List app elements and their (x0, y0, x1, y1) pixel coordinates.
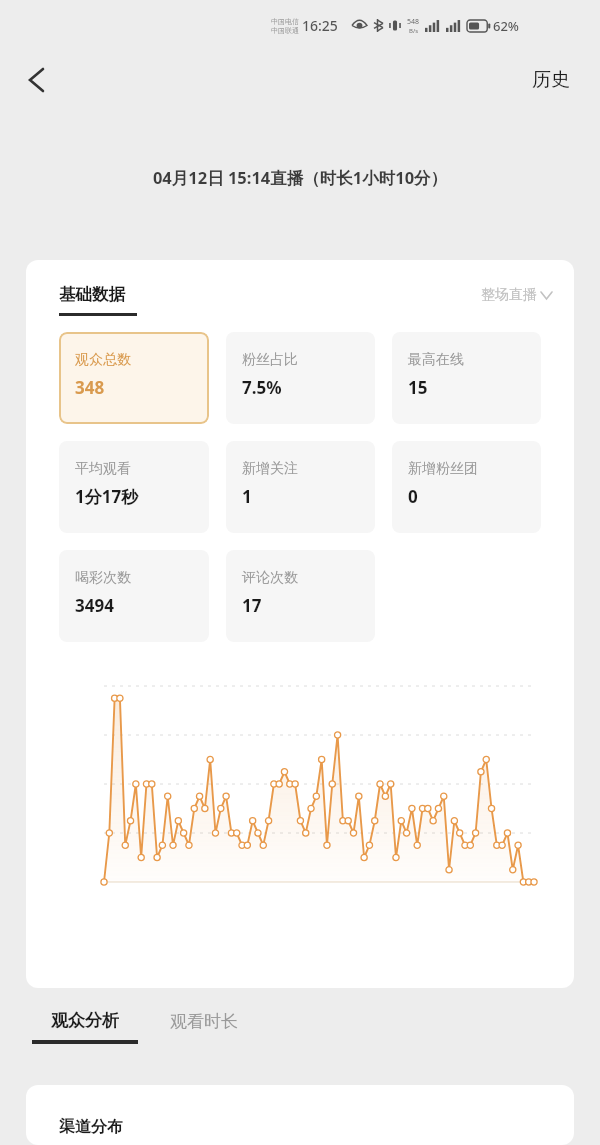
staticText: 观众分析 (51, 1010, 119, 1031)
staticText: 16:25 (302, 16, 338, 35)
staticText: 中国电信 (271, 17, 299, 26)
button[interactable]: 新增粉丝团 (392, 441, 541, 533)
button[interactable]: 观看时长 (170, 1010, 238, 1032)
staticText: 粉丝占比 (242, 351, 298, 369)
staticText: 整场直播 (481, 286, 537, 304)
staticText: 喝彩次数 (75, 569, 131, 587)
button[interactable]: 观众分析 (32, 1010, 138, 1044)
staticText: 1分17秒 (75, 485, 139, 508)
staticText: 观众总数 (75, 351, 131, 369)
staticText: 新增粉丝团 (408, 460, 478, 478)
staticText: 1 (242, 485, 252, 508)
button[interactable]: 最高在线 (392, 332, 541, 424)
button[interactable]: 观众总数 (59, 332, 209, 424)
staticText: 348 (75, 376, 105, 399)
staticText: 最高在线 (408, 351, 464, 369)
button[interactable]: 喝彩次数 (59, 550, 209, 642)
button[interactable]: 新增关注 (226, 441, 375, 533)
staticText: 基础数据 (59, 284, 125, 305)
staticText: 中国联通 (271, 26, 299, 35)
staticText: 17 (242, 594, 262, 617)
button[interactable]: Back (14, 58, 58, 102)
staticText: 观看时长 (170, 1011, 238, 1032)
button[interactable]: 平均观看 (59, 441, 209, 533)
staticText: 历史 (532, 68, 570, 92)
staticText: 7.5% (242, 376, 282, 399)
staticText: 548 (407, 17, 420, 27)
staticText: 62% (493, 17, 519, 35)
button[interactable]: 基础数据 (59, 284, 137, 316)
button[interactable]: 评论次数 (226, 550, 375, 642)
staticText: 0 (408, 485, 418, 508)
button[interactable]: 整场直播 (481, 286, 552, 304)
button[interactable]: 粉丝占比 (226, 332, 375, 424)
staticText: 渠道分布 (59, 1117, 123, 1137)
staticText: 04月12日 15:14直播（时长1小时10分） (0, 166, 600, 189)
staticText: B/s (409, 27, 419, 35)
staticText: 新增关注 (242, 460, 298, 478)
staticText: 平均观看 (75, 460, 131, 478)
staticText: 3494 (75, 594, 114, 617)
staticText: 评论次数 (242, 569, 298, 587)
staticText: 15 (408, 376, 428, 399)
